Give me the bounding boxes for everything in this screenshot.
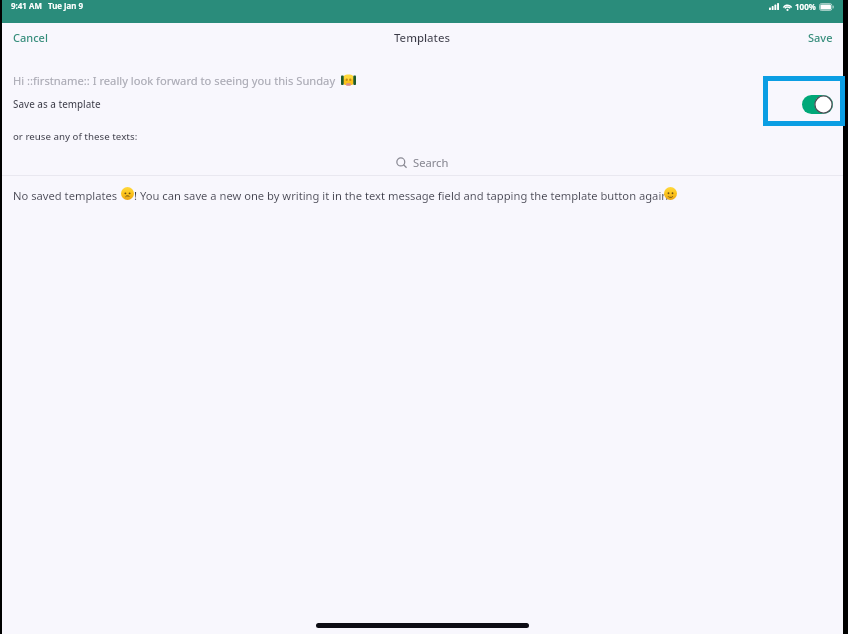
staticText: No saved templates <box>13 188 121 203</box>
staticText: Search <box>413 155 449 170</box>
staticText: or reuse any of these texts: <box>13 130 138 143</box>
staticText: Save as a template <box>13 98 101 111</box>
staticText: Hi ::firstname:: I really look forward t… <box>13 73 338 88</box>
button[interactable]: Save as a template toggle <box>802 95 833 114</box>
button[interactable]: Save as a template <box>2 93 843 116</box>
staticText: Save <box>808 30 833 45</box>
staticText: 100% <box>795 1 816 12</box>
button[interactable]: Save <box>795 25 843 53</box>
staticText: 9:41 AM Tue Jan 9 <box>11 0 83 11</box>
button[interactable]: Search <box>2 148 843 175</box>
button[interactable]: Cancel <box>2 25 61 53</box>
staticText: Templates <box>394 30 451 46</box>
staticText: Cancel <box>13 30 48 45</box>
staticText: ! You can save a new one by writing it i… <box>134 188 672 203</box>
